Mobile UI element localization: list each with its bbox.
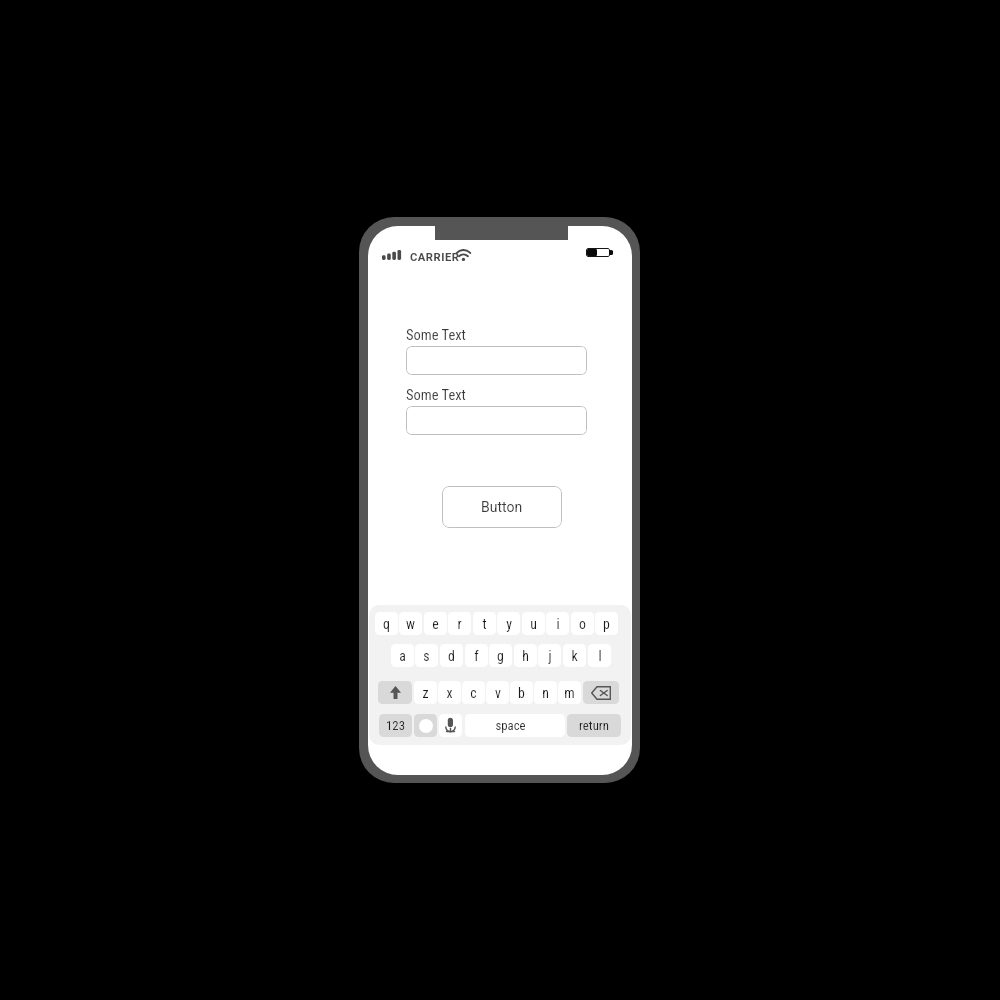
- button[interactable]: h: [514, 644, 537, 667]
- button[interactable]: e: [424, 612, 447, 635]
- staticText: y: [506, 616, 512, 632]
- staticText: j: [548, 648, 552, 664]
- button[interactable]: w: [399, 612, 422, 635]
- button[interactable]: i: [546, 612, 569, 635]
- button[interactable]: n: [534, 681, 557, 704]
- button[interactable]: Backspace: [583, 681, 619, 704]
- staticText: u: [530, 616, 537, 632]
- staticText: CARRIER: [410, 251, 460, 264]
- button[interactable]: m: [558, 681, 581, 704]
- staticText: n: [542, 685, 549, 701]
- button[interactable]: d: [440, 644, 463, 667]
- staticText: o: [579, 616, 586, 632]
- staticText: Button: [481, 499, 523, 515]
- button[interactable]: j: [538, 644, 561, 667]
- staticText: h: [522, 648, 529, 664]
- staticText: Some Text: [406, 327, 466, 344]
- staticText: m: [564, 685, 575, 701]
- staticText: d: [448, 648, 455, 664]
- button[interactable]: return: [567, 714, 621, 737]
- button[interactable]: Shift: [378, 681, 412, 704]
- button[interactable]: o: [571, 612, 594, 635]
- button[interactable]: p: [595, 612, 618, 635]
- button[interactable]: s: [415, 644, 438, 667]
- staticText: c: [470, 685, 477, 701]
- staticText: i: [556, 616, 560, 632]
- button[interactable]: space: [465, 714, 565, 737]
- button[interactable]: r: [448, 612, 471, 635]
- button[interactable]: Switch keyboard: [414, 714, 437, 737]
- button[interactable]: v: [486, 681, 509, 704]
- button[interactable]: b: [510, 681, 533, 704]
- button[interactable]: [406, 346, 587, 375]
- staticText: 123: [386, 718, 405, 733]
- staticText: Some Text: [406, 387, 466, 404]
- staticText: f: [474, 648, 479, 664]
- button[interactable]: y: [497, 612, 520, 635]
- staticText: b: [518, 685, 525, 701]
- staticText: k: [571, 648, 578, 664]
- button[interactable]: g: [489, 644, 512, 667]
- staticText: p: [603, 616, 610, 632]
- button[interactable]: l: [588, 644, 611, 667]
- staticText: s: [423, 648, 430, 664]
- button[interactable]: z: [414, 681, 437, 704]
- button[interactable]: f: [465, 644, 488, 667]
- staticText: t: [482, 616, 487, 632]
- button[interactable]: [406, 406, 587, 435]
- button[interactable]: Dictation: [439, 714, 462, 737]
- staticText: g: [497, 648, 504, 664]
- staticText: return: [579, 718, 609, 733]
- staticText: r: [457, 616, 462, 632]
- button[interactable]: k: [563, 644, 586, 667]
- button[interactable]: t: [473, 612, 496, 635]
- button[interactable]: c: [462, 681, 485, 704]
- staticText: space: [495, 718, 526, 733]
- staticText: q: [383, 616, 390, 632]
- button[interactable]: x: [438, 681, 461, 704]
- staticText: x: [446, 685, 453, 701]
- staticText: l: [598, 648, 602, 664]
- staticText: e: [432, 616, 439, 632]
- staticText: v: [495, 685, 501, 701]
- staticText: w: [406, 616, 415, 632]
- staticText: z: [422, 685, 429, 701]
- button[interactable]: Button: [442, 486, 562, 528]
- button[interactable]: q: [375, 612, 398, 635]
- button[interactable]: a: [391, 644, 414, 667]
- staticText: a: [399, 648, 406, 664]
- button[interactable]: u: [522, 612, 545, 635]
- button[interactable]: 123: [379, 714, 412, 737]
